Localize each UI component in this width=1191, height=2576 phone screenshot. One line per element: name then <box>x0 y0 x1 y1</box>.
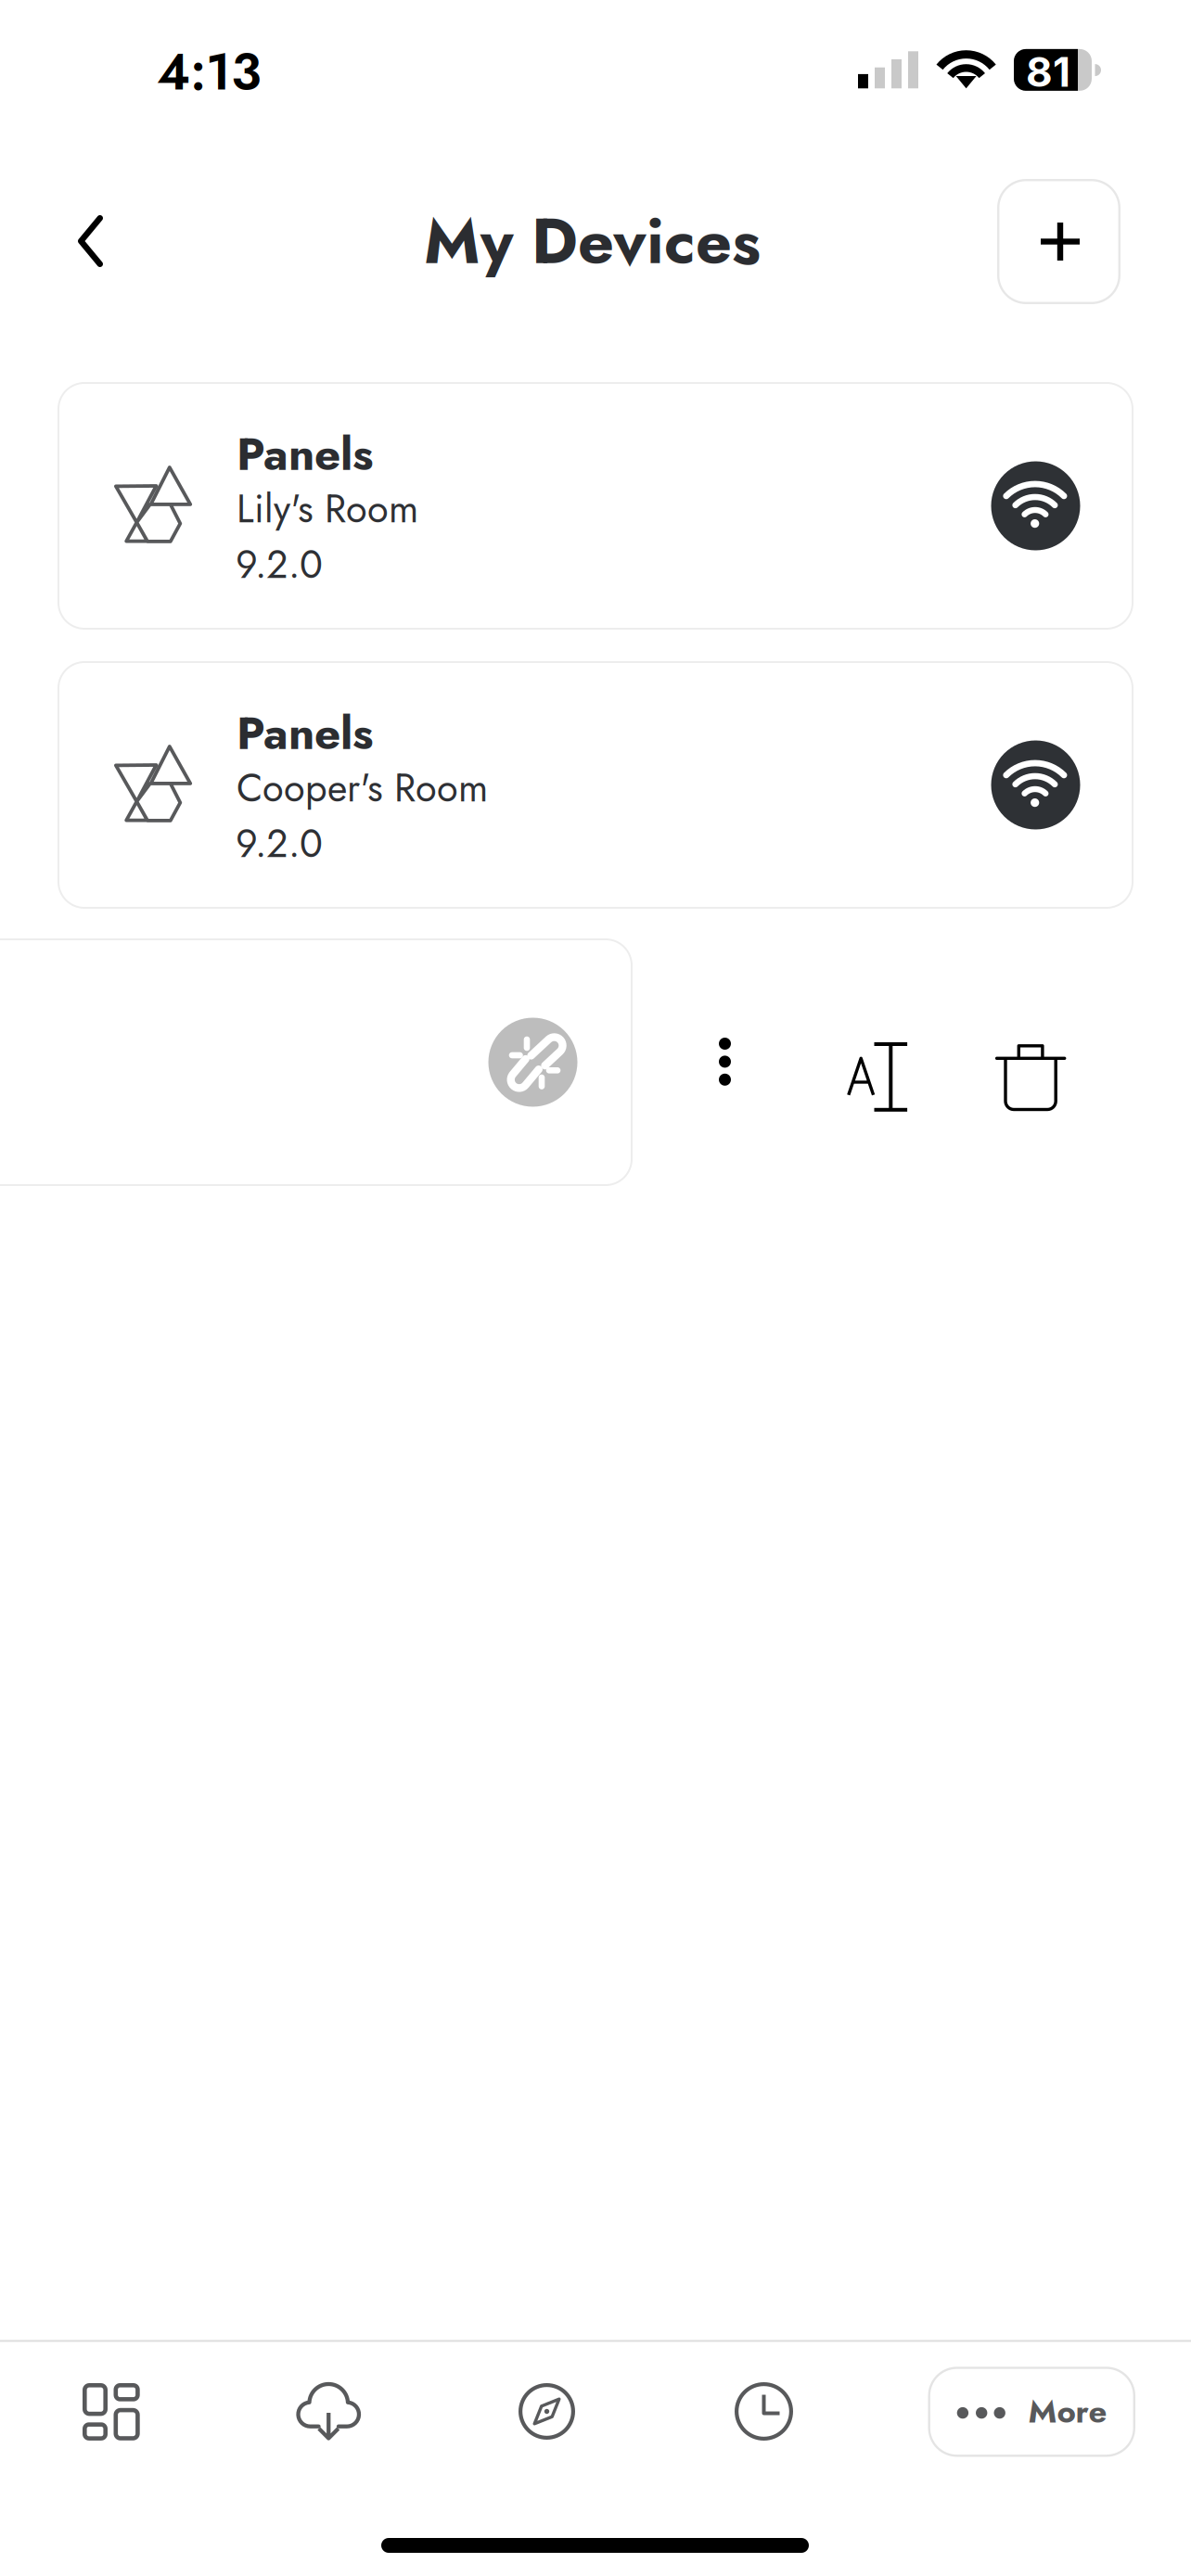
button[interactable]: Firmware updates <box>297 2381 360 2441</box>
button[interactable]: Delete <box>996 1044 1065 1111</box>
button[interactable]: Add device <box>997 179 1121 304</box>
staticText: 81 <box>1026 47 1070 97</box>
staticText: Panels <box>237 700 373 766</box>
staticText: More <box>1028 2388 1107 2434</box>
staticText: 9.2.0 <box>236 816 323 871</box>
staticText: Lily's Room <box>237 481 418 537</box>
button[interactable]: Schedules <box>735 2382 793 2441</box>
staticText: Cooper's Room <box>237 760 488 816</box>
button[interactable]: Discover <box>519 2383 575 2440</box>
button[interactable]: Dashboard <box>83 2383 140 2440</box>
staticText: 9.2.0 <box>236 537 323 592</box>
staticText: 4:13 <box>157 35 262 108</box>
button[interactable]: Back <box>42 178 176 306</box>
staticText: Panels <box>237 421 373 487</box>
button[interactable]: Rename <box>847 1042 907 1112</box>
button[interactable]: Panels <box>58 382 1133 630</box>
button[interactable]: Panels <box>58 661 1133 909</box>
staticText: My Devices <box>424 196 761 287</box>
button[interactable]: More <box>928 2367 1135 2457</box>
button[interactable]: More options <box>719 1038 731 1086</box>
button[interactable] <box>0 938 633 1186</box>
